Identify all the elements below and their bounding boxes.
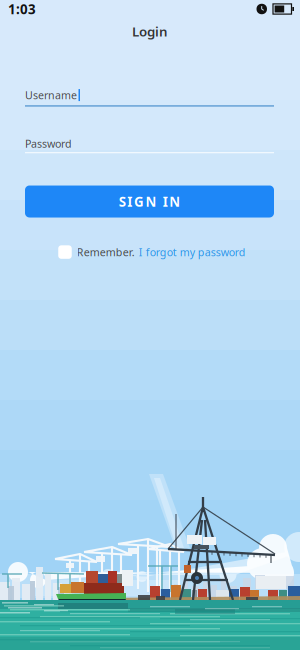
staticText: Password (25, 136, 72, 151)
staticText: 1:03 (8, 0, 36, 18)
button[interactable]: SIGN IN (25, 185, 274, 217)
staticText: Remember. (77, 245, 135, 259)
staticText: SIGN IN (119, 193, 180, 210)
staticText: Login (132, 22, 168, 40)
button[interactable]: Remember. (58, 245, 135, 259)
staticText: I forgot my password (139, 245, 246, 259)
button[interactable]: Username (25, 88, 274, 108)
button[interactable]: I forgot my password (139, 245, 246, 259)
staticText: Username (25, 88, 77, 102)
button[interactable]: Password (25, 136, 274, 154)
